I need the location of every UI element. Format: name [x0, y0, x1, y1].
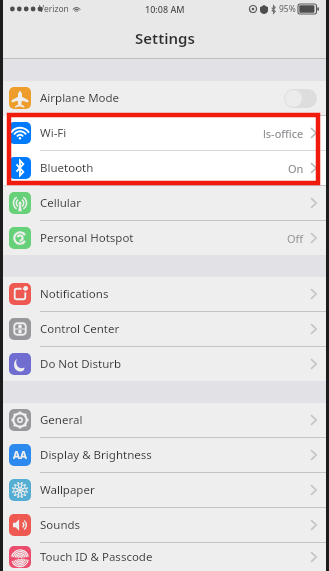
button[interactable]: Airplane Mode toggle: [284, 89, 317, 108]
staticText: Wallpaper: [40, 482, 95, 498]
staticText: Display & Brightness: [40, 447, 152, 463]
staticText: AA: [13, 448, 27, 462]
staticText: Touch ID & Passcode: [40, 549, 153, 565]
button[interactable]: Cellular: [3, 186, 326, 220]
staticText: Personal Hotspot: [40, 230, 134, 246]
button[interactable]: Sounds: [3, 508, 326, 542]
staticText: General: [40, 412, 83, 428]
button[interactable]: Airplane Mode: [3, 81, 326, 115]
staticText: Notifications: [40, 286, 109, 302]
button[interactable]: Do Not Disturb: [3, 347, 326, 381]
button[interactable]: Wallpaper: [3, 473, 326, 507]
button[interactable]: General: [3, 403, 326, 437]
staticText: Off: [287, 231, 304, 246]
staticText: Airplane Mode: [40, 90, 120, 106]
staticText: Bluetooth: [40, 160, 94, 176]
staticText: On: [288, 161, 304, 176]
staticText: 10:08 AM: [145, 3, 185, 15]
staticText: Verizon: [39, 3, 69, 15]
staticText: Do Not Disturb: [40, 356, 122, 372]
button[interactable]: AA: [3, 438, 326, 472]
staticText: ls-office: [263, 126, 304, 141]
button[interactable]: Bluetooth: [3, 151, 326, 185]
staticText: Sounds: [40, 517, 81, 533]
staticText: 95%: [279, 3, 296, 15]
staticText: Settings: [135, 28, 195, 48]
staticText: Cellular: [40, 195, 81, 211]
staticText: Wi-Fi: [40, 125, 67, 141]
button[interactable]: Control Center: [3, 312, 326, 346]
button[interactable]: Notifications: [3, 277, 326, 311]
button[interactable]: Wi-Fi: [3, 116, 326, 150]
button[interactable]: Touch ID & Passcode: [3, 543, 326, 571]
button[interactable]: Personal Hotspot: [3, 221, 326, 255]
staticText: Control Center: [40, 321, 120, 337]
